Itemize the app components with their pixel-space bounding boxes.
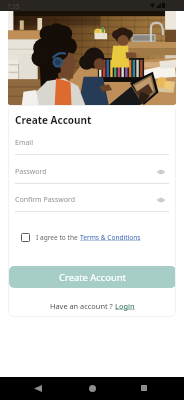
staticText: Create Account bbox=[59, 271, 127, 284]
staticText: I agree to the bbox=[36, 233, 80, 242]
button[interactable]: Home bbox=[82, 378, 102, 398]
button[interactable]: Show password bbox=[155, 167, 166, 176]
button[interactable]: Recent apps bbox=[134, 378, 154, 398]
staticText: Confirm Password bbox=[15, 195, 158, 204]
staticText: Email bbox=[15, 138, 169, 147]
button[interactable]: Login bbox=[115, 301, 135, 311]
staticText: Have an account ? bbox=[50, 301, 115, 311]
staticText: Create Account bbox=[15, 113, 92, 127]
button[interactable]: Show password bbox=[155, 195, 166, 204]
staticText: Terms & Conditions bbox=[80, 233, 141, 242]
staticText: 7:35 bbox=[7, 2, 20, 10]
button[interactable]: I agree to the bbox=[15, 232, 169, 243]
button[interactable]: Back bbox=[28, 378, 48, 398]
button[interactable]: Create Account bbox=[9, 266, 176, 288]
staticText: Password bbox=[15, 167, 158, 176]
